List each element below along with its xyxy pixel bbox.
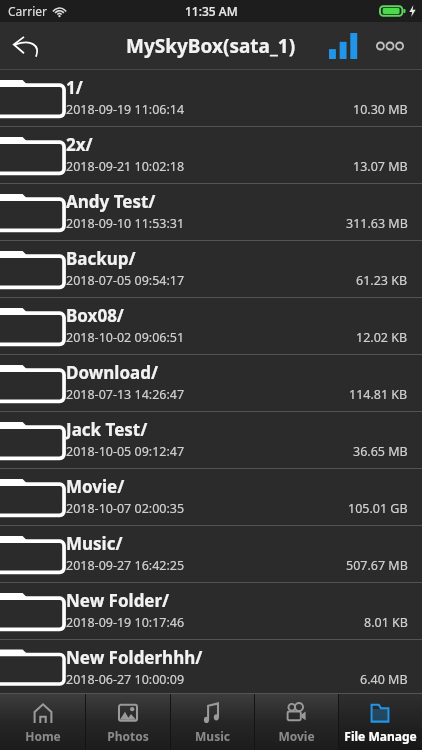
button[interactable]: 1/	[0, 70, 422, 127]
staticText: 2018-10-05 09:12:47	[66, 443, 185, 460]
staticText: 2018-09-19 10:17:46	[66, 614, 185, 631]
staticText: 8.01 KB	[364, 614, 408, 631]
staticText: Carrier	[8, 3, 48, 19]
button[interactable]: Music/	[0, 526, 422, 583]
button[interactable]: New Folderhhh/	[0, 640, 422, 694]
staticText: Backup/	[66, 247, 136, 270]
staticText: 105.01 GB	[348, 500, 408, 517]
staticText: MySkyBox(sata_1)	[126, 33, 296, 59]
staticText: 2018-07-13 14:26:47	[66, 386, 185, 403]
staticText: 2018-09-10 11:53:31	[66, 215, 185, 232]
staticText: 61.23 KB	[356, 272, 408, 289]
staticText: 114.81 KB	[349, 386, 408, 403]
button[interactable]: Backup/	[0, 241, 422, 298]
staticText: 2018-09-19 11:06:14	[66, 101, 185, 118]
button[interactable]: Photos	[85, 694, 170, 750]
staticText: File Manage	[344, 728, 417, 744]
button[interactable]: Download/	[0, 355, 422, 412]
button[interactable]: Home	[0, 694, 85, 750]
button[interactable]: Andy Test/	[0, 184, 422, 241]
staticText: Jack Test/	[66, 418, 148, 441]
staticText: 507.67 MB	[346, 557, 408, 574]
staticText: Andy Test/	[66, 190, 156, 213]
staticText: 2018-10-02 09:06:51	[66, 329, 185, 346]
button[interactable]: Signal strength	[322, 22, 366, 70]
staticText: 2x/	[66, 133, 93, 156]
staticText: 1/	[66, 76, 83, 99]
staticText: Music/	[66, 532, 123, 555]
button[interactable]: New Folder/	[0, 583, 422, 640]
button[interactable]: More options	[366, 22, 414, 70]
staticText: 2018-09-27 16:42:25	[66, 557, 185, 574]
staticText: Movie/	[66, 475, 125, 498]
button[interactable]: Movie/	[0, 469, 422, 526]
button[interactable]: Box08/	[0, 298, 422, 355]
staticText: 12.02 KB	[356, 329, 408, 346]
staticText: 2018-06-27 10:00:09	[66, 671, 185, 688]
staticText: Home	[25, 728, 61, 744]
staticText: 36.65 MB	[353, 443, 408, 460]
staticText: 311.63 MB	[346, 215, 408, 232]
button[interactable]: Music	[170, 694, 254, 750]
staticText: 10.30 MB	[353, 101, 408, 118]
staticText: 6.40 MB	[360, 671, 408, 688]
button[interactable]: File Manage	[338, 694, 422, 750]
staticText: 2018-09-21 10:02:18	[66, 158, 185, 175]
staticText: 13.07 MB	[353, 158, 408, 175]
staticText: New Folder/	[66, 589, 170, 612]
button[interactable]: 2x/	[0, 127, 422, 184]
staticText: 2018-10-07 02:00:35	[66, 500, 185, 517]
staticText: Box08/	[66, 304, 124, 327]
staticText: 11:35 AM	[185, 3, 238, 19]
staticText: Photos	[107, 728, 149, 744]
staticText: 2018-07-05 09:54:17	[66, 272, 185, 289]
staticText: Music	[195, 728, 230, 744]
button[interactable]: Movie	[254, 694, 338, 750]
button[interactable]: Back	[0, 22, 54, 70]
staticText: Movie	[278, 728, 315, 744]
button[interactable]: Jack Test/	[0, 412, 422, 469]
staticText: New Folderhhh/	[66, 646, 203, 669]
staticText: Download/	[66, 361, 159, 384]
